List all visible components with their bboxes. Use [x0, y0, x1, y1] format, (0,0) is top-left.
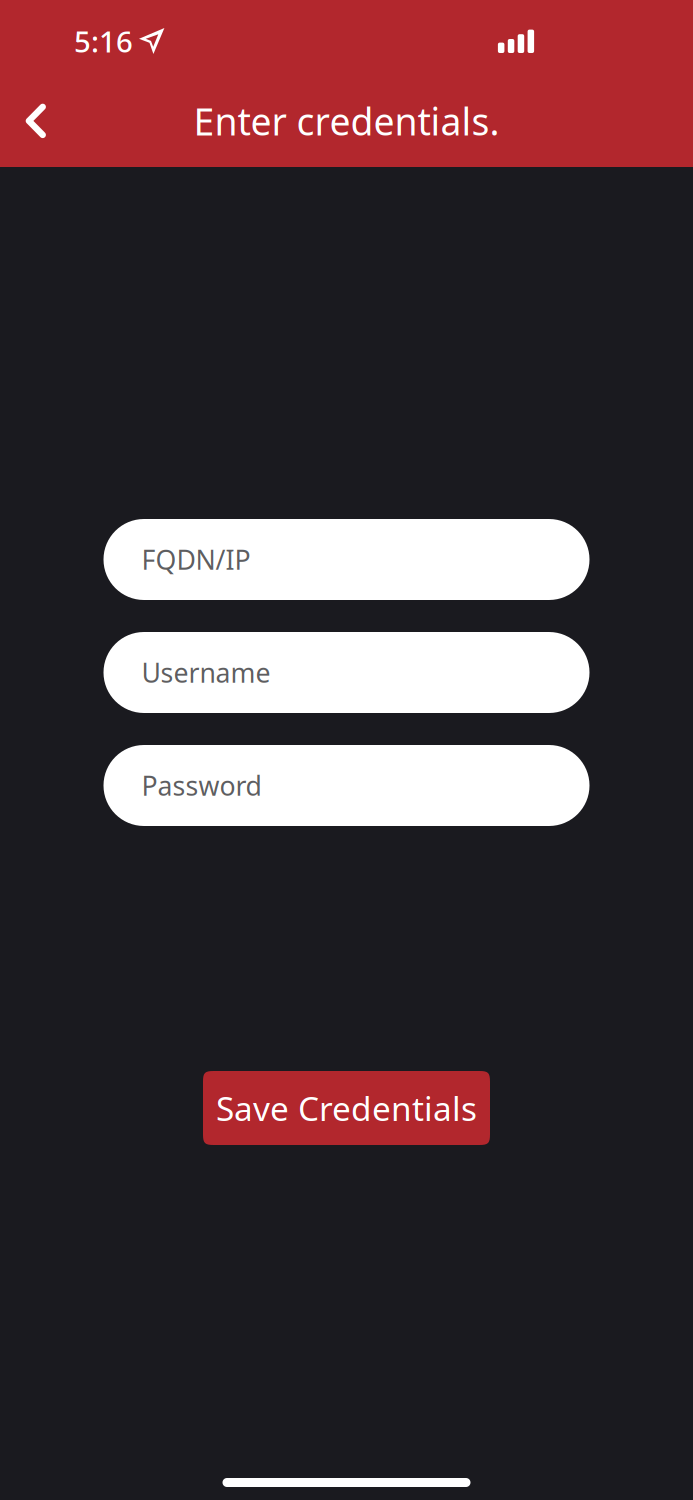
button[interactable]: Username — [103, 632, 589, 713]
staticText: Save Credentials — [216, 1086, 477, 1130]
staticText: Password — [141, 768, 261, 803]
button[interactable]: Back — [0, 82, 72, 160]
button[interactable]: Password — [103, 745, 589, 826]
staticText: 5:16 — [74, 21, 133, 60]
staticText: FQDN/IP — [141, 542, 250, 577]
staticText: Username — [141, 655, 270, 690]
button[interactable]: Save Credentials — [203, 1071, 490, 1145]
staticText: Enter credentials. — [193, 96, 499, 146]
button[interactable]: FQDN/IP — [103, 519, 589, 600]
